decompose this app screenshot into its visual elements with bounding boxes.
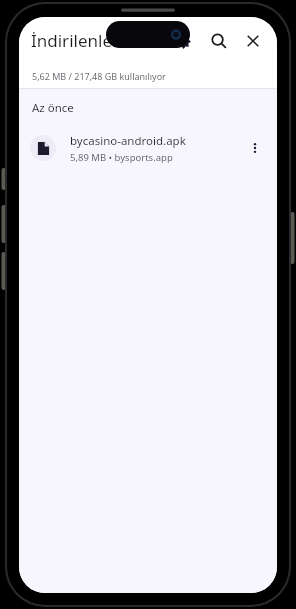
button[interactable]: More options xyxy=(241,134,269,162)
staticText: Az önce xyxy=(32,100,74,116)
button[interactable]: bycasino-android.apk xyxy=(19,127,277,169)
button[interactable]: Settings xyxy=(170,28,196,54)
button[interactable]: Search xyxy=(204,26,234,56)
staticText: bycasino-android.apk xyxy=(70,133,186,149)
staticText: İndirilenler xyxy=(31,29,119,52)
staticText: 5,89 MB • bysports.app xyxy=(70,151,173,164)
button[interactable]: Close xyxy=(238,26,268,56)
staticText: 5,62 MB / 217,48 GB kullanılıyor xyxy=(32,70,166,82)
